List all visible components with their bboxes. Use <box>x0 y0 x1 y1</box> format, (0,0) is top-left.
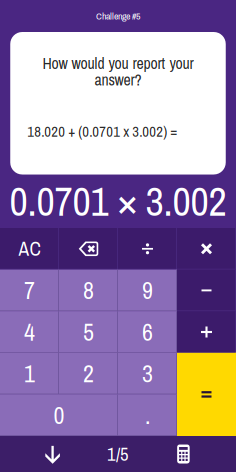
button[interactable]: 1/5 <box>105 436 131 472</box>
button[interactable]: Next question <box>0 436 105 472</box>
staticText: 6 <box>142 316 153 348</box>
button[interactable]: 4 <box>0 311 59 353</box>
button[interactable]: Subtract <box>177 270 236 311</box>
button[interactable]: 8 <box>59 270 118 311</box>
button[interactable]: 1 <box>0 353 59 394</box>
button[interactable]: 3 <box>118 353 177 394</box>
staticText: 18.020 + (0.0701 x 3.002) = <box>27 122 177 141</box>
staticText: 7 <box>24 274 35 306</box>
staticText: AC <box>18 236 40 262</box>
button[interactable]: 5 <box>59 311 118 353</box>
button[interactable]: Add <box>177 311 236 353</box>
button[interactable]: 7 <box>0 270 59 311</box>
button[interactable]: Equals <box>177 353 236 436</box>
staticText: Challenge #5 <box>96 9 140 23</box>
staticText: . <box>145 399 150 431</box>
staticText: 4 <box>24 316 35 348</box>
staticText: 3 <box>142 357 153 390</box>
button[interactable]: 2 <box>59 353 118 394</box>
staticText: 0 <box>53 399 64 431</box>
staticText: 2 <box>83 357 94 390</box>
staticText: 9 <box>142 274 153 306</box>
staticText: 1/5 <box>107 441 129 466</box>
button[interactable]: . <box>118 394 177 436</box>
button[interactable]: All clear <box>0 228 59 270</box>
button[interactable]: 9 <box>118 270 177 311</box>
button[interactable]: Divide <box>118 228 177 270</box>
staticText: 5 <box>83 316 94 348</box>
staticText: 1 <box>24 357 35 390</box>
button[interactable]: 0 <box>0 394 118 436</box>
button[interactable]: 6 <box>118 311 177 353</box>
button[interactable]: Multiply <box>177 228 236 270</box>
staticText: 0.0701 × 3.002 <box>9 174 226 228</box>
button[interactable]: Delete <box>59 228 118 270</box>
button[interactable]: Calculator <box>131 436 236 472</box>
staticText: 8 <box>83 274 94 306</box>
staticText: How would you report your <box>42 53 193 74</box>
staticText: answer? <box>94 69 141 90</box>
